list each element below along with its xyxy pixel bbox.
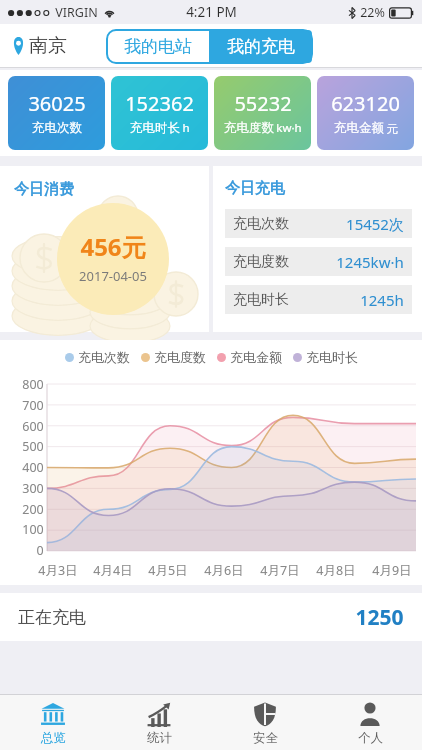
button[interactable]: 152362	[111, 76, 208, 150]
staticText: 623120	[331, 90, 400, 117]
button[interactable]: 个人	[318, 695, 422, 750]
staticText: 4月6日	[204, 562, 244, 579]
staticText: 152362	[125, 90, 194, 117]
staticText: 充电时长	[130, 120, 180, 136]
button[interactable]: 南京	[12, 34, 67, 58]
other: 安全	[252, 701, 278, 727]
staticText: 55232	[234, 90, 292, 117]
button[interactable]: 充电次数	[65, 349, 130, 365]
staticText: 600	[22, 418, 44, 435]
staticText: 统计	[147, 730, 172, 746]
button[interactable]: 充电度数	[233, 247, 404, 276]
button[interactable]: 正在充电	[18, 593, 404, 641]
staticText: 充电金额	[230, 349, 282, 365]
button[interactable]: 统计	[106, 695, 212, 750]
staticText: 正在充电	[18, 607, 86, 628]
staticText: 充电次数	[78, 349, 130, 365]
button[interactable]: 充电时长	[293, 349, 358, 365]
button[interactable]: 我的电站	[107, 30, 209, 63]
staticText: 0	[36, 542, 44, 559]
staticText: 今日消费	[14, 180, 74, 199]
staticText: 456元	[80, 230, 146, 263]
staticText: 800	[22, 376, 44, 393]
staticText: 22%	[360, 4, 385, 21]
staticText: 2017-04-05	[79, 267, 147, 285]
other: 总览	[40, 701, 66, 727]
staticText: 充电度数	[233, 253, 289, 271]
staticText: kw·h	[276, 120, 302, 136]
staticText: 我的充电	[227, 36, 295, 57]
staticText: 安全	[253, 730, 278, 746]
staticText: 4月5日	[148, 562, 188, 579]
staticText: 4月9日	[372, 562, 412, 579]
staticText: 南京	[29, 34, 67, 58]
staticText: 1245h	[360, 290, 404, 310]
button[interactable]: 36025	[8, 76, 105, 150]
staticText: 400	[22, 459, 44, 476]
button[interactable]: 充电度数	[141, 349, 206, 365]
staticText: 充电次数	[233, 215, 289, 233]
button[interactable]: 我的充电	[209, 30, 312, 63]
staticText: 4:21 PM	[186, 3, 237, 21]
button[interactable]: 456元	[0, 166, 209, 332]
button[interactable]: 充电金额	[217, 349, 282, 365]
button[interactable]: 55232	[214, 76, 311, 150]
button[interactable]: 623120	[317, 76, 414, 150]
staticText: 1245kw·h	[336, 252, 404, 272]
staticText: 4月3日	[38, 562, 78, 579]
staticText: 元	[386, 122, 398, 136]
other: 统计	[146, 701, 172, 727]
staticText: 充电度数	[224, 120, 274, 136]
staticText: 100	[22, 521, 44, 538]
staticText: 200	[22, 501, 44, 518]
staticText: 4月8日	[316, 562, 356, 579]
staticText: 15452次	[346, 214, 404, 234]
staticText: 充电时长	[306, 349, 358, 365]
staticText: 我的电站	[124, 36, 192, 57]
staticText: 个人	[358, 730, 383, 746]
staticText: h	[182, 120, 190, 136]
button[interactable]: 充电次数	[233, 209, 404, 238]
staticText: 总览	[41, 730, 66, 746]
staticText: 4月7日	[260, 562, 300, 579]
staticText: 500	[22, 438, 44, 455]
staticText: 充电度数	[154, 349, 206, 365]
staticText: 36025	[28, 90, 86, 117]
staticText: 4月4日	[93, 562, 133, 579]
button[interactable]: 充电时长	[233, 285, 404, 314]
staticText: 300	[22, 480, 44, 497]
staticText: 今日充电	[225, 179, 285, 198]
staticText: 1250	[355, 603, 404, 632]
staticText: 充电时长	[233, 291, 289, 309]
staticText: VIRGIN	[55, 4, 98, 21]
other: 个人	[357, 701, 383, 727]
button[interactable]: 安全	[212, 695, 318, 750]
staticText: 充电金额	[334, 120, 384, 136]
staticText: 700	[22, 397, 44, 414]
button[interactable]: 总览	[0, 695, 106, 750]
staticText: 充电次数	[32, 120, 82, 136]
